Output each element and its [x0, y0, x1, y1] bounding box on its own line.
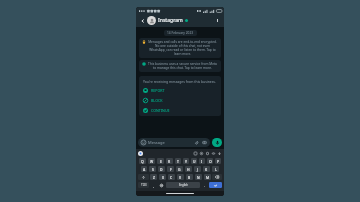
staticText: O: [209, 159, 212, 164]
staticText: English: [179, 183, 188, 187]
button[interactable]: P: [215, 158, 221, 164]
staticText: U: [193, 159, 196, 164]
button[interactable]: Y: [183, 158, 189, 164]
button[interactable]: G: [176, 166, 183, 172]
staticText: ,: [153, 183, 155, 188]
button[interactable]: Gboard: [138, 151, 143, 156]
button[interactable]: M: [204, 174, 211, 180]
button[interactable]: Z: [150, 174, 157, 180]
button[interactable]: D: [158, 166, 165, 172]
staticText: W: [150, 159, 154, 164]
staticText: P: [217, 159, 220, 164]
staticText: C: [170, 175, 173, 180]
button[interactable]: Message: [138, 138, 210, 147]
staticText: ?123: [141, 183, 147, 187]
staticText: K: [205, 167, 208, 172]
button[interactable]: E: [157, 158, 164, 164]
button[interactable]: B: [186, 174, 193, 180]
staticText: Message: [148, 140, 165, 145]
staticText: .: [204, 183, 206, 188]
staticText: You're receiving messages from this busi…: [143, 79, 216, 84]
button[interactable]: F: [167, 166, 174, 172]
button[interactable]: S: [149, 166, 156, 172]
button[interactable]: Comma: [150, 182, 157, 188]
staticText: BLOCK: [151, 98, 163, 103]
button[interactable]: Voice input: [217, 151, 222, 156]
button[interactable]: Camera: [202, 140, 207, 145]
button[interactable]: Modifier key: [212, 174, 222, 180]
button[interactable]: Keyboard tool 3: [205, 151, 210, 156]
button[interactable]: I: [199, 158, 205, 164]
button[interactable]: N: [195, 174, 202, 180]
button[interactable]: A: [141, 166, 147, 172]
button[interactable]: X: [159, 174, 166, 180]
button[interactable]: Keyboard tool 1: [193, 151, 198, 156]
button[interactable]: REPORT: [143, 88, 217, 93]
button[interactable]: L: [212, 166, 219, 172]
button[interactable]: U: [191, 158, 197, 164]
button[interactable]: Attach: [194, 140, 199, 145]
staticText: M: [206, 175, 210, 180]
button[interactable]: Back: [139, 17, 146, 24]
button[interactable]: Voice message: [212, 138, 222, 147]
button[interactable]: Enter: [209, 182, 222, 188]
staticText: H: [187, 167, 190, 172]
staticText: G: [178, 167, 181, 172]
button[interactable]: W: [148, 158, 155, 164]
staticText: Z: [153, 175, 155, 180]
button[interactable]: Modifier key: [138, 174, 149, 180]
staticText: J: [197, 167, 198, 172]
staticText: A: [143, 167, 146, 172]
button[interactable]: BLOCK: [143, 98, 217, 103]
button[interactable]: C: [168, 174, 175, 180]
button[interactable]: R: [166, 158, 173, 164]
button[interactable]: Instagram: [147, 16, 214, 25]
staticText: V: [179, 175, 182, 180]
button[interactable]: Change language: [158, 182, 165, 188]
staticText: N: [197, 175, 200, 180]
button[interactable]: Q: [139, 158, 146, 164]
staticText: Y: [185, 159, 187, 164]
staticText: Q: [141, 159, 144, 164]
button[interactable]: J: [194, 166, 201, 172]
button[interactable]: Period: [201, 182, 208, 188]
button[interactable]: O: [207, 158, 213, 164]
button[interactable]: More options: [214, 17, 221, 24]
staticText: S: [152, 167, 154, 172]
button[interactable]: V: [177, 174, 184, 180]
staticText: B: [188, 175, 191, 180]
button[interactable]: Keyboard tool 2: [199, 151, 204, 156]
staticText: REPORT: [151, 88, 165, 93]
staticText: E: [160, 159, 162, 164]
button[interactable]: K: [203, 166, 210, 172]
button[interactable]: T: [175, 158, 181, 164]
staticText: Messages and calls are end-to-end encryp…: [147, 40, 218, 56]
staticText: This business uses a secure service from…: [147, 62, 218, 70]
staticText: I: [201, 159, 203, 164]
staticText: R: [168, 159, 171, 164]
button[interactable]: H: [185, 166, 192, 172]
staticText: T: [177, 159, 179, 164]
staticText: D: [160, 167, 163, 172]
staticText: F: [170, 167, 172, 172]
button[interactable]: ?123: [138, 182, 149, 188]
button[interactable]: CONTINUE: [143, 108, 217, 113]
staticText: L: [215, 167, 217, 172]
button[interactable]: English: [166, 182, 200, 188]
staticText: Instagram: [158, 17, 183, 24]
button[interactable]: Keyboard tool 4: [211, 151, 216, 156]
staticText: 14 February 2023: [167, 31, 194, 35]
staticText: CONTINUE: [151, 108, 170, 113]
staticText: X: [162, 175, 164, 180]
